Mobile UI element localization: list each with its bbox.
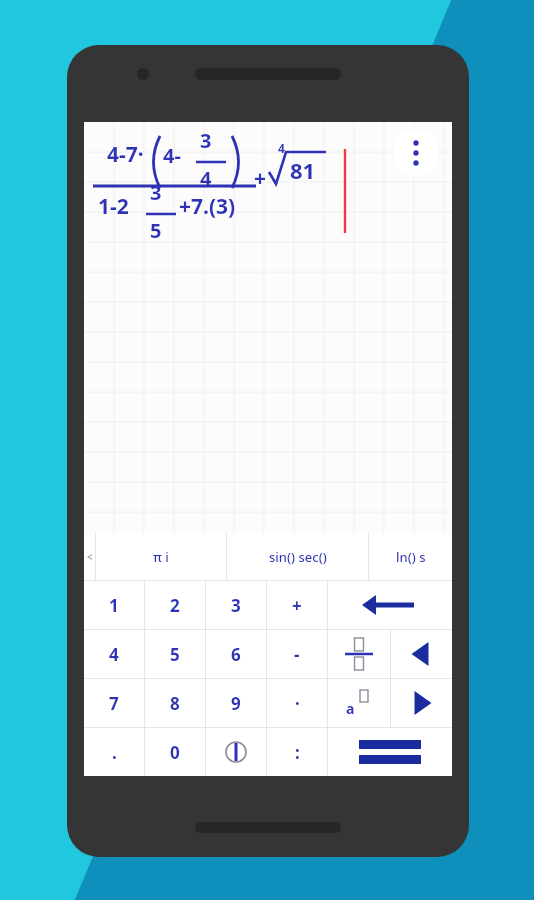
staticText: 3 [231,594,241,617]
button[interactable]: Power [328,679,390,727]
button[interactable]: + [267,581,327,629]
staticText: 2 [170,594,180,617]
button[interactable]: ln() s [369,533,452,580]
button[interactable]: 9 [206,679,266,727]
staticText: 5 [170,643,180,666]
staticText: · [295,692,300,715]
staticText: + [292,594,302,617]
button[interactable]: 1 [84,581,144,629]
staticText: : [295,741,300,764]
button[interactable]: More options [393,130,439,176]
button[interactable]: . [84,728,144,776]
button[interactable]: 5 [145,630,205,678]
staticText: 7 [109,692,119,715]
staticText: 8 [170,692,180,715]
staticText: - [294,643,300,666]
button[interactable]: 6 [206,630,266,678]
staticText: 4-7· [107,140,144,169]
staticText: 81 [290,155,316,185]
button[interactable]: 8 [145,679,205,727]
staticText: 5 [150,217,162,244]
button[interactable]: Backspace [328,581,452,629]
staticText: < [87,550,93,564]
staticText: a [346,699,355,718]
button[interactable]: 7 [84,679,144,727]
staticText: +7.(3) [179,192,236,221]
staticText: . [112,741,117,764]
button[interactable]: 4 [84,630,144,678]
staticText: 4- [163,142,181,169]
staticText: 3 [200,127,212,154]
staticText: 0 [170,741,180,764]
button[interactable]: · [267,679,327,727]
staticText: + [254,164,267,193]
button[interactable]: sin() sec() [227,533,368,580]
button[interactable]: 0 [145,728,205,776]
staticText: sin() sec() [269,548,327,566]
staticText: 1-2 [98,192,129,221]
staticText: π i [153,548,169,566]
staticText: 9 [231,692,241,715]
button[interactable]: π i [96,533,226,580]
staticText: ln() s [396,548,426,566]
staticText: 4 [200,165,212,192]
staticText: 1 [109,594,119,617]
staticText: 4 [278,140,285,156]
button[interactable]: Move left [391,630,452,678]
staticText: 3 [150,179,162,206]
button[interactable]: 3 [206,581,266,629]
button[interactable]: Fraction [328,630,390,678]
button[interactable]: Scroll functions left [84,533,95,580]
staticText: 6 [231,643,241,666]
staticText: 4 [109,643,119,666]
button[interactable]: - [267,630,327,678]
button[interactable]: 2 [145,581,205,629]
button[interactable]: Move right [391,679,452,727]
button[interactable]: Equals [328,728,452,776]
button[interactable]: : [267,728,327,776]
button[interactable] [206,728,266,776]
